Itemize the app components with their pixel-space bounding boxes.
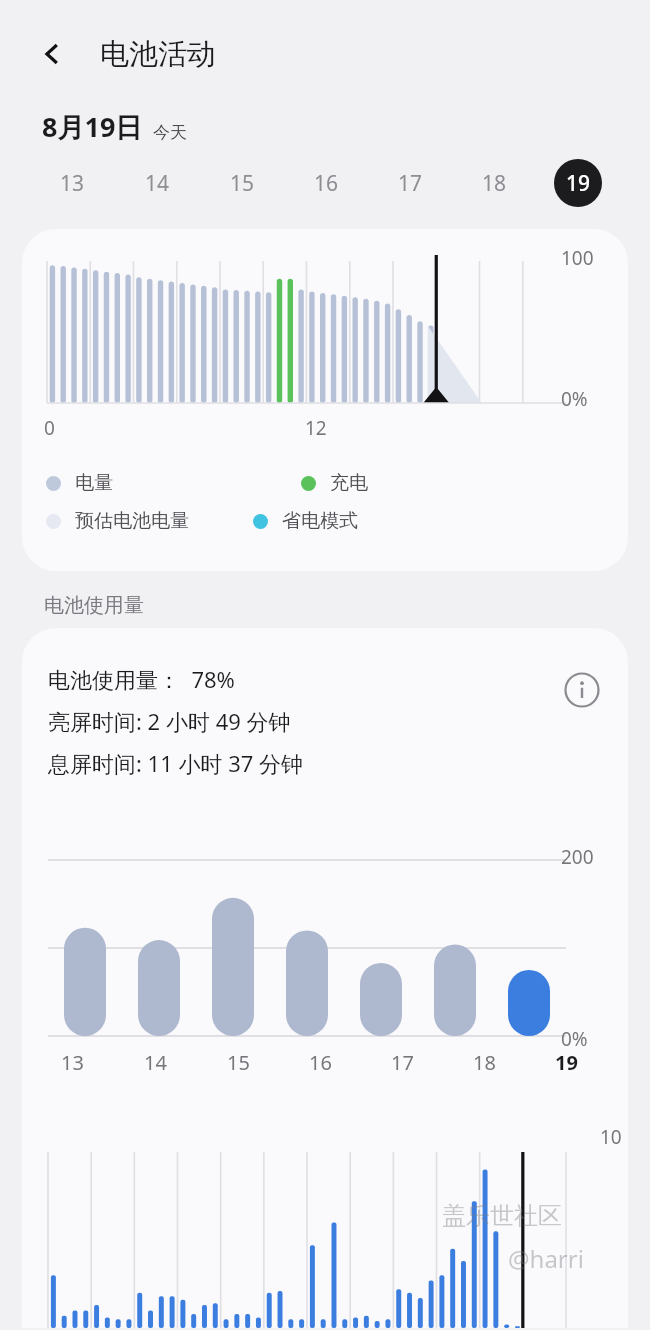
button[interactable]: 19 — [536, 145, 620, 221]
staticText: 今天 — [153, 122, 187, 143]
staticText: 电量 — [75, 471, 113, 495]
staticText: 10 — [600, 1124, 622, 1150]
staticText: 12 — [305, 415, 327, 441]
staticText: 15 — [230, 169, 255, 198]
staticText: 14 — [144, 1049, 167, 1076]
staticText: @harri — [508, 1242, 584, 1275]
staticText: 省电模式 — [282, 509, 358, 533]
staticText: 电池使用量： 78% — [48, 664, 235, 694]
staticText: 盖乐世社区 — [442, 1201, 562, 1231]
staticText: 13 — [61, 1049, 84, 1076]
staticText: 18 — [482, 169, 507, 198]
staticText: 电池使用量 — [44, 593, 144, 618]
staticText: 0 — [44, 415, 55, 441]
button[interactable]: 电池使用量： 78% — [22, 628, 628, 1328]
staticText: 18 — [473, 1049, 496, 1076]
button[interactable]: Back — [26, 28, 78, 80]
staticText: 14 — [145, 169, 170, 198]
button[interactable]: 100 — [22, 229, 628, 571]
staticText: 预估电池电量 — [75, 509, 189, 533]
staticText: 100 — [561, 245, 594, 271]
staticText: 16 — [314, 169, 339, 198]
staticText: 19 — [566, 169, 591, 198]
button[interactable]: Information — [556, 664, 608, 716]
staticText: 0% — [561, 386, 588, 412]
staticText: 充电 — [330, 471, 368, 495]
button[interactable]: 14 — [115, 145, 200, 221]
staticText: 13 — [60, 169, 85, 198]
staticText: 0% — [561, 1026, 588, 1052]
staticText: 15 — [227, 1049, 250, 1076]
button[interactable]: 15 — [200, 145, 284, 221]
staticText: 亮屏时间: 2 小时 49 分钟 — [48, 706, 291, 736]
staticText: 200 — [561, 844, 594, 870]
staticText: 息屏时间: 11 小时 37 分钟 — [48, 748, 304, 778]
button[interactable]: 16 — [284, 145, 368, 221]
staticText: 8月19日 — [42, 108, 143, 145]
button[interactable]: 17 — [368, 145, 452, 221]
staticText: 电池活动 — [100, 36, 216, 73]
staticText: 17 — [398, 169, 423, 198]
staticText: 17 — [391, 1049, 414, 1076]
button[interactable]: 18 — [452, 145, 536, 221]
button[interactable]: 13 — [30, 145, 115, 221]
staticText: 19 — [555, 1049, 578, 1076]
staticText: 16 — [309, 1049, 332, 1076]
